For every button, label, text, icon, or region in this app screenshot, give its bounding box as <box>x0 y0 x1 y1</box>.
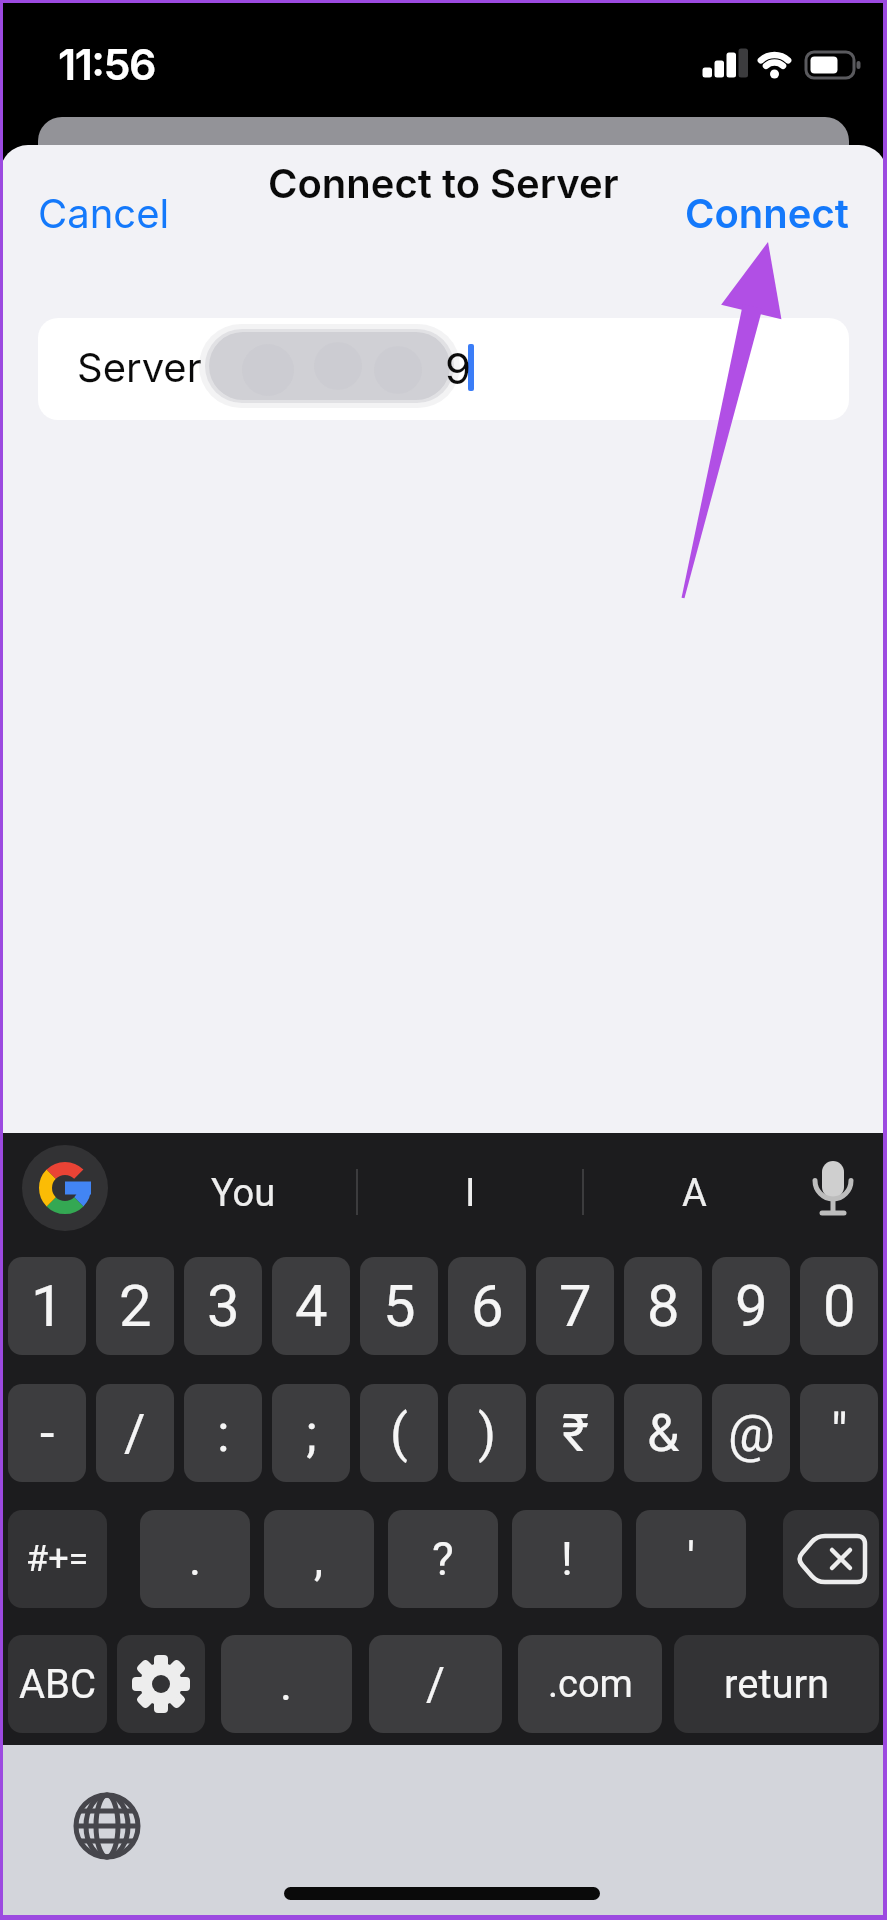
staticText: 0 <box>823 1272 856 1340</box>
button[interactable]: @ <box>712 1384 790 1482</box>
button[interactable]: " <box>800 1384 878 1482</box>
button[interactable]: 4 <box>272 1257 350 1355</box>
button[interactable]: ' <box>636 1510 746 1608</box>
staticText: 1 <box>31 1272 64 1340</box>
staticText: A <box>682 1171 707 1216</box>
button[interactable] <box>783 1510 879 1608</box>
staticText: 8 <box>647 1272 680 1340</box>
button[interactable]: 1 <box>8 1257 86 1355</box>
staticText: 5 <box>383 1272 416 1340</box>
staticText: 3 <box>207 1272 240 1340</box>
staticText: You <box>211 1171 276 1216</box>
button[interactable]: ABC <box>8 1635 107 1733</box>
button[interactable]: 9 <box>712 1257 790 1355</box>
staticText: Connect to Server <box>268 159 619 207</box>
staticText: . <box>280 1657 293 1711</box>
button[interactable]: I <box>410 1168 530 1218</box>
staticText: return <box>724 1661 830 1708</box>
button[interactable]: : <box>184 1384 262 1482</box>
staticText: ) <box>478 1403 497 1464</box>
button[interactable]: / <box>96 1384 174 1482</box>
button[interactable]: 8 <box>624 1257 702 1355</box>
staticText: @ <box>728 1403 775 1464</box>
staticText: ABC <box>19 1661 97 1708</box>
staticText: Connect <box>685 189 849 237</box>
staticText: : <box>217 1403 230 1464</box>
staticText: 11:56 <box>58 38 156 90</box>
button[interactable]: ₹ <box>536 1384 614 1482</box>
staticText: 2 <box>119 1272 152 1340</box>
button[interactable]: Cancel <box>38 189 170 237</box>
button[interactable] <box>72 1791 142 1861</box>
staticText: - <box>40 1403 55 1464</box>
staticText: Server <box>77 343 202 391</box>
button[interactable]: Connect <box>685 189 849 237</box>
staticText: 7 <box>559 1272 592 1340</box>
staticText: 4 <box>295 1272 328 1340</box>
button[interactable]: , <box>264 1510 374 1608</box>
button[interactable]: 3 <box>184 1257 262 1355</box>
staticText: #+= <box>26 1538 89 1580</box>
button[interactable]: 7 <box>536 1257 614 1355</box>
button[interactable]: A <box>634 1168 754 1218</box>
button[interactable]: - <box>8 1384 86 1482</box>
button[interactable]: ) <box>448 1384 526 1482</box>
button[interactable]: return <box>674 1635 879 1733</box>
staticText: & <box>647 1403 680 1464</box>
staticText: ' <box>687 1532 696 1586</box>
button[interactable]: Server <box>38 318 849 420</box>
button[interactable]: ? <box>388 1510 498 1608</box>
button[interactable]: / <box>369 1635 502 1733</box>
button[interactable]: 6 <box>448 1257 526 1355</box>
button[interactable]: ! <box>512 1510 622 1608</box>
staticText: 6 <box>471 1272 504 1340</box>
staticText: ! <box>561 1532 573 1586</box>
staticText: , <box>314 1532 324 1586</box>
button[interactable]: . <box>221 1635 352 1733</box>
staticText: ; <box>306 1403 317 1464</box>
button[interactable]: 0 <box>800 1257 878 1355</box>
staticText: 9 <box>445 343 472 394</box>
button[interactable]: . <box>140 1510 250 1608</box>
staticText: I <box>465 1171 476 1216</box>
button[interactable]: 2 <box>96 1257 174 1355</box>
staticText: ₹ <box>562 1403 589 1464</box>
staticText: Cancel <box>38 189 170 237</box>
button[interactable] <box>117 1635 205 1733</box>
staticText: ? <box>432 1532 454 1586</box>
button[interactable]: ( <box>360 1384 438 1482</box>
button[interactable]: #+= <box>8 1510 107 1608</box>
staticText: . <box>189 1532 202 1586</box>
staticText: ( <box>390 1403 408 1464</box>
button[interactable]: .com <box>518 1635 662 1733</box>
button[interactable]: 5 <box>360 1257 438 1355</box>
staticText: / <box>426 1657 445 1711</box>
staticText: " <box>831 1403 848 1464</box>
button[interactable]: & <box>624 1384 702 1482</box>
staticText: 9 <box>735 1272 768 1340</box>
staticText: .com <box>548 1662 633 1707</box>
button[interactable]: You <box>183 1168 303 1218</box>
staticText: / <box>124 1403 146 1464</box>
button[interactable] <box>22 1145 108 1231</box>
button[interactable]: ; <box>272 1384 350 1482</box>
